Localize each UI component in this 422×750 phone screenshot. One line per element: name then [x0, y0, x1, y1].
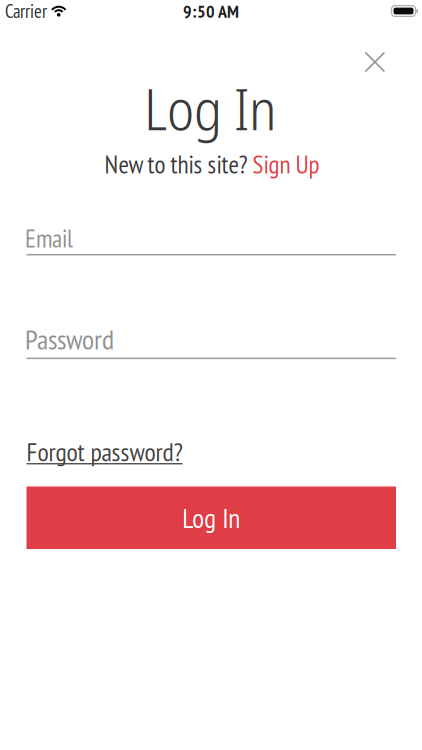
staticText: Carrier	[5, 0, 47, 23]
staticText: Forgot password?	[26, 435, 182, 468]
staticText: Password	[25, 321, 114, 357]
staticText: New to this site?	[104, 148, 252, 180]
staticText: Sign Up	[252, 148, 319, 180]
staticText: 9:50 AM	[183, 0, 239, 23]
staticText: Log In	[144, 69, 277, 147]
button[interactable]: Forgot password?	[26, 435, 182, 468]
button[interactable]: Sign Up	[252, 148, 319, 180]
button[interactable]: Close	[365, 52, 385, 72]
staticText: Email	[25, 222, 73, 254]
staticText: Log In	[182, 500, 240, 535]
button[interactable]: Log In	[26, 486, 396, 549]
